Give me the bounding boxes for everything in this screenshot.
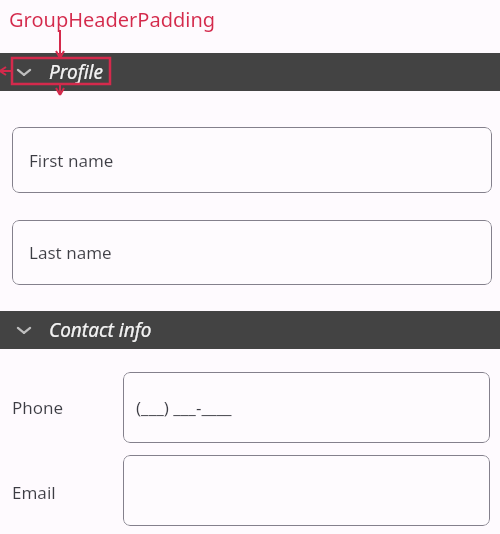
button[interactable]: Contact info (0, 311, 500, 349)
staticText: Phone (12, 396, 64, 419)
button[interactable]: First name (12, 127, 492, 193)
button[interactable]: (___) ___-____ (123, 372, 490, 443)
staticText: First name (29, 149, 114, 172)
staticText: GroupHeaderPadding (9, 6, 216, 33)
staticText: Contact info (49, 317, 152, 343)
staticText: Profile (49, 59, 103, 85)
button[interactable]: Profile (0, 53, 500, 91)
staticText: Last name (29, 241, 112, 264)
staticText: Email (12, 481, 56, 504)
button[interactable]: Last name (12, 220, 492, 285)
staticText: (___) ___-____ (136, 396, 232, 419)
button[interactable] (123, 455, 490, 526)
